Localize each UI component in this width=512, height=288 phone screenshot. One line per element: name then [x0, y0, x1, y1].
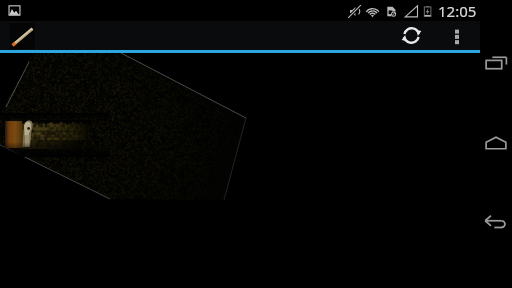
- button[interactable]: More options: [442, 21, 471, 50]
- staticText: 12:05: [438, 1, 477, 21]
- button[interactable]: Home: [480, 126, 512, 160]
- button[interactable]: Recent apps: [480, 46, 512, 80]
- button[interactable]: Back: [480, 206, 512, 240]
- button[interactable]: Navigate up: [10, 23, 35, 49]
- button[interactable]: Refresh: [397, 21, 426, 50]
